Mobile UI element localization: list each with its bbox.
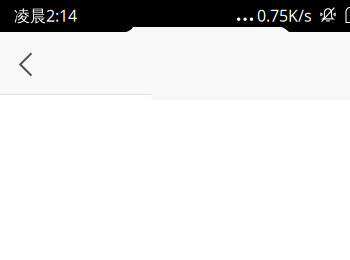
staticText: 凌晨2:14 bbox=[14, 5, 77, 26]
button[interactable]: Back bbox=[3, 41, 49, 87]
staticText: 0.75K/s bbox=[257, 5, 312, 26]
